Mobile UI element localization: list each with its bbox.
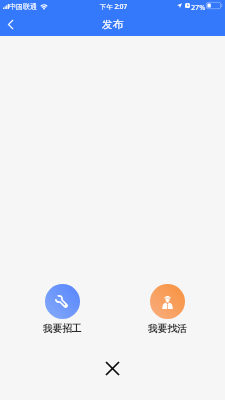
staticText: 27% [191,2,206,12]
button[interactable]: 我要招工 [27,284,97,335]
staticText: 我要招工 [43,323,82,335]
staticText: 中国联通 [9,2,37,11]
button[interactable]: 我要找活 [132,284,202,335]
staticText: 下午 2:07 [100,2,128,11]
button[interactable]: Back [0,14,21,34]
staticText: 我要找活 [148,323,187,335]
button[interactable]: Close [98,354,126,382]
staticText: 发布 [102,18,123,31]
